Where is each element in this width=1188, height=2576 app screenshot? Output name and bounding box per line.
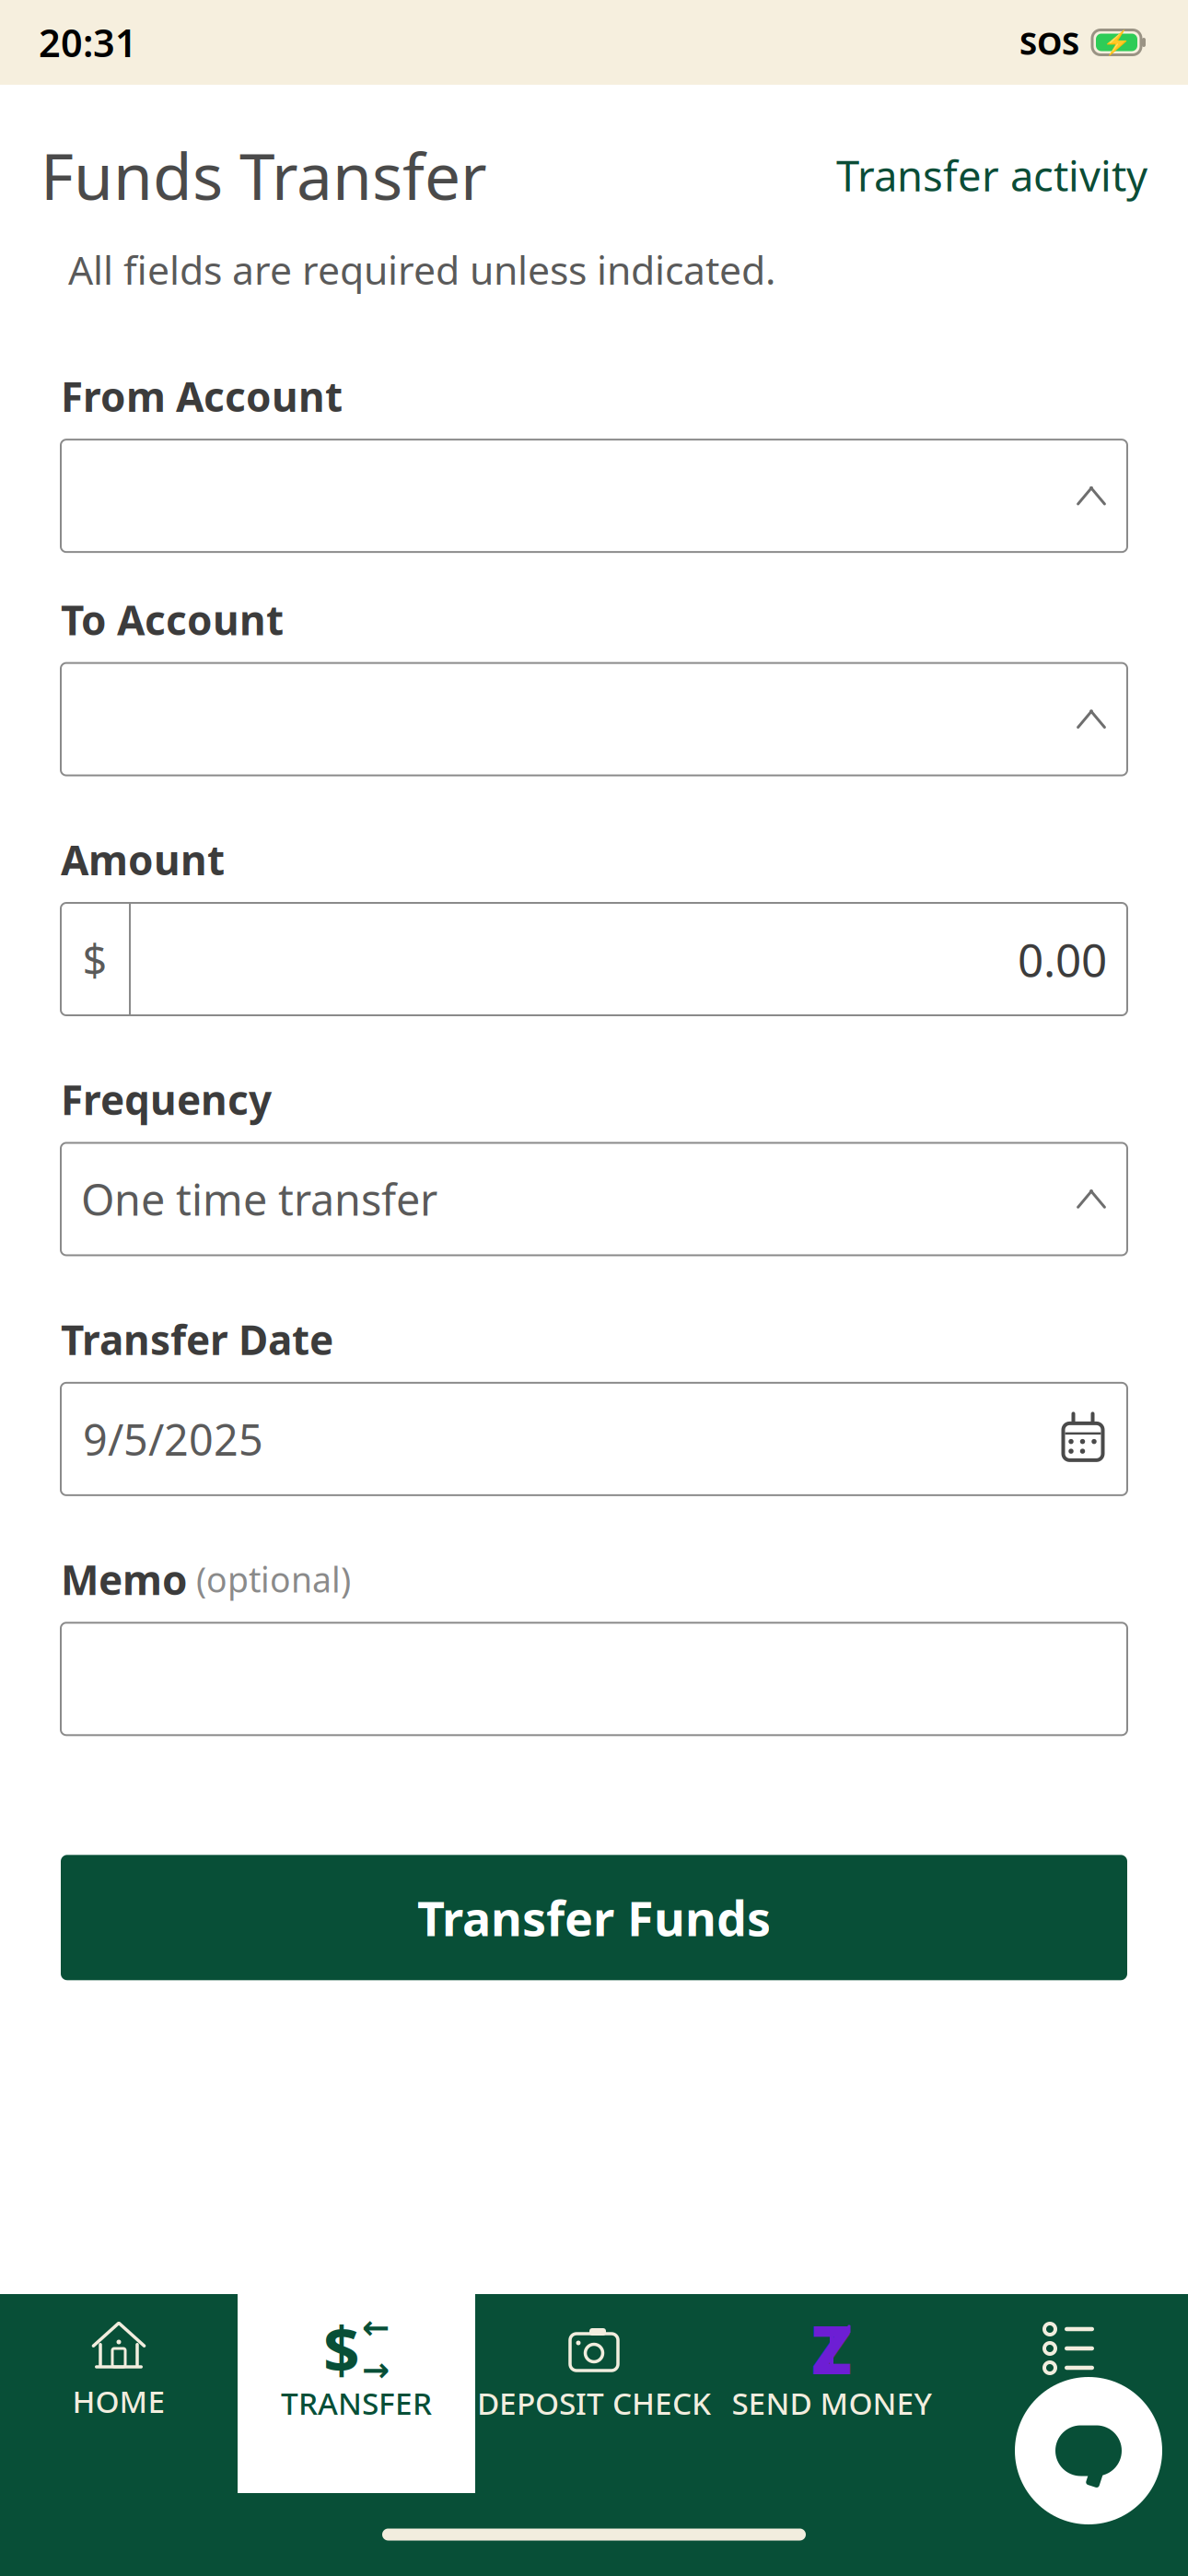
staticText: 9/5/2025 (83, 1410, 263, 1468)
staticText: $ (82, 931, 107, 988)
button[interactable]: 9/5/2025 (61, 1383, 1127, 1495)
staticText: TRANSFER (281, 2383, 432, 2423)
staticText: HOME (72, 2381, 165, 2421)
staticText: Funds Transfer (41, 133, 487, 218)
button[interactable]: DEPOSIT CHECK (475, 2294, 713, 2493)
staticText: Memo (61, 1552, 188, 1606)
button[interactable]: One time transfer (61, 1143, 1127, 1255)
button[interactable]: Chat with us (1015, 2377, 1162, 2524)
button[interactable] (61, 663, 1127, 775)
button[interactable] (950, 2294, 1188, 2493)
staticText: Amount (61, 833, 225, 886)
staticText: (optional) (196, 1556, 351, 1602)
staticText: All fields are required unless indicated… (68, 243, 775, 296)
staticText: Transfer activity (836, 147, 1147, 203)
staticText: 20:31 (39, 17, 137, 68)
button[interactable]: HOME (0, 2294, 238, 2493)
staticText: ⚡ (1102, 29, 1131, 56)
button[interactable]: Transfer Funds (61, 1855, 1127, 1980)
staticText: Z (811, 2304, 852, 2392)
staticText: SOS (1019, 21, 1079, 64)
staticText: ← (362, 2308, 390, 2346)
button[interactable]: Z (713, 2294, 950, 2493)
staticText: Transfer Funds (417, 1886, 771, 1949)
staticText: 0.00 (1018, 929, 1107, 989)
button[interactable]: $ (238, 2294, 475, 2493)
staticText: To Account (61, 593, 284, 646)
button[interactable] (61, 440, 1127, 552)
staticText: Frequency (61, 1072, 272, 1126)
button[interactable]: Transfer activity (836, 147, 1147, 203)
staticText: One time transfer (81, 1171, 437, 1228)
staticText: $ (323, 2306, 360, 2391)
staticText: Transfer Date (61, 1312, 333, 1366)
staticText: DEPOSIT CHECK (477, 2383, 711, 2423)
staticText: → (362, 2351, 390, 2388)
staticText: From Account (61, 369, 343, 423)
staticText: SEND MONEY (732, 2383, 932, 2423)
